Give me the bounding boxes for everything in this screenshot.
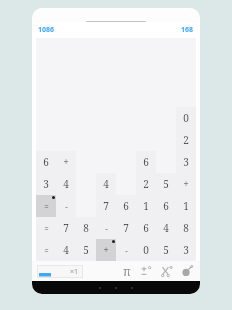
staticText: 3	[183, 155, 189, 169]
button[interactable]: 7	[56, 217, 76, 239]
button[interactable]: 4	[56, 239, 76, 261]
button[interactable]: Plus minus power-up	[139, 263, 155, 279]
button[interactable]: 0	[176, 107, 196, 129]
staticText: 1	[183, 199, 189, 213]
button[interactable]: +	[176, 173, 196, 195]
button[interactable]: 5	[156, 239, 176, 261]
button[interactable]: 1086	[38, 25, 55, 35]
button[interactable]: +	[56, 151, 76, 173]
staticText: 3	[183, 243, 189, 257]
button[interactable]: 4	[56, 173, 76, 195]
button[interactable]: 6	[136, 217, 156, 239]
button[interactable]: 4	[156, 217, 176, 239]
button[interactable]: 7	[96, 195, 116, 217]
button[interactable]: -	[116, 239, 136, 261]
button[interactable]: +	[96, 239, 116, 261]
button[interactable]: 6	[36, 151, 56, 173]
staticText: =	[44, 201, 49, 212]
staticText: 4	[103, 177, 109, 191]
button[interactable]: 4	[96, 173, 116, 195]
button[interactable]: ×1	[37, 265, 83, 278]
button[interactable]: =	[36, 239, 56, 261]
button[interactable]: 3	[36, 173, 56, 195]
staticText: 7	[123, 221, 129, 235]
staticText: 3	[43, 177, 49, 191]
button[interactable]: 8	[176, 217, 196, 239]
button[interactable]: 2	[176, 129, 196, 151]
button[interactable]: 8	[76, 217, 96, 239]
button[interactable]: 2	[136, 173, 156, 195]
button[interactable]: =	[36, 195, 56, 217]
button[interactable]: 7	[116, 217, 136, 239]
button[interactable]: 1	[136, 195, 156, 217]
button[interactable]: 5	[156, 173, 176, 195]
staticText: 7	[63, 221, 69, 235]
button[interactable]: 6	[136, 151, 156, 173]
button[interactable]: 168	[181, 25, 194, 35]
button[interactable]: =	[36, 217, 56, 239]
staticText: 5	[163, 177, 169, 191]
staticText: 1086	[38, 25, 55, 35]
button[interactable]: 3	[176, 239, 196, 261]
staticText: =	[44, 245, 49, 256]
button[interactable]: -	[96, 217, 116, 239]
button[interactable]: 5	[76, 239, 96, 261]
button[interactable]: Bomb power-up	[179, 263, 195, 279]
button[interactable]: Scissors power-up	[159, 263, 175, 279]
button[interactable]: 3	[176, 151, 196, 173]
button[interactable]: -	[56, 195, 76, 217]
button[interactable]: Pi power-up	[119, 263, 135, 279]
staticText: +	[183, 177, 189, 191]
button[interactable]: 0	[136, 239, 156, 261]
button[interactable]: 1	[176, 195, 196, 217]
staticText: +	[63, 155, 69, 169]
button[interactable]: 6	[116, 195, 136, 217]
button[interactable]: 6	[156, 195, 176, 217]
